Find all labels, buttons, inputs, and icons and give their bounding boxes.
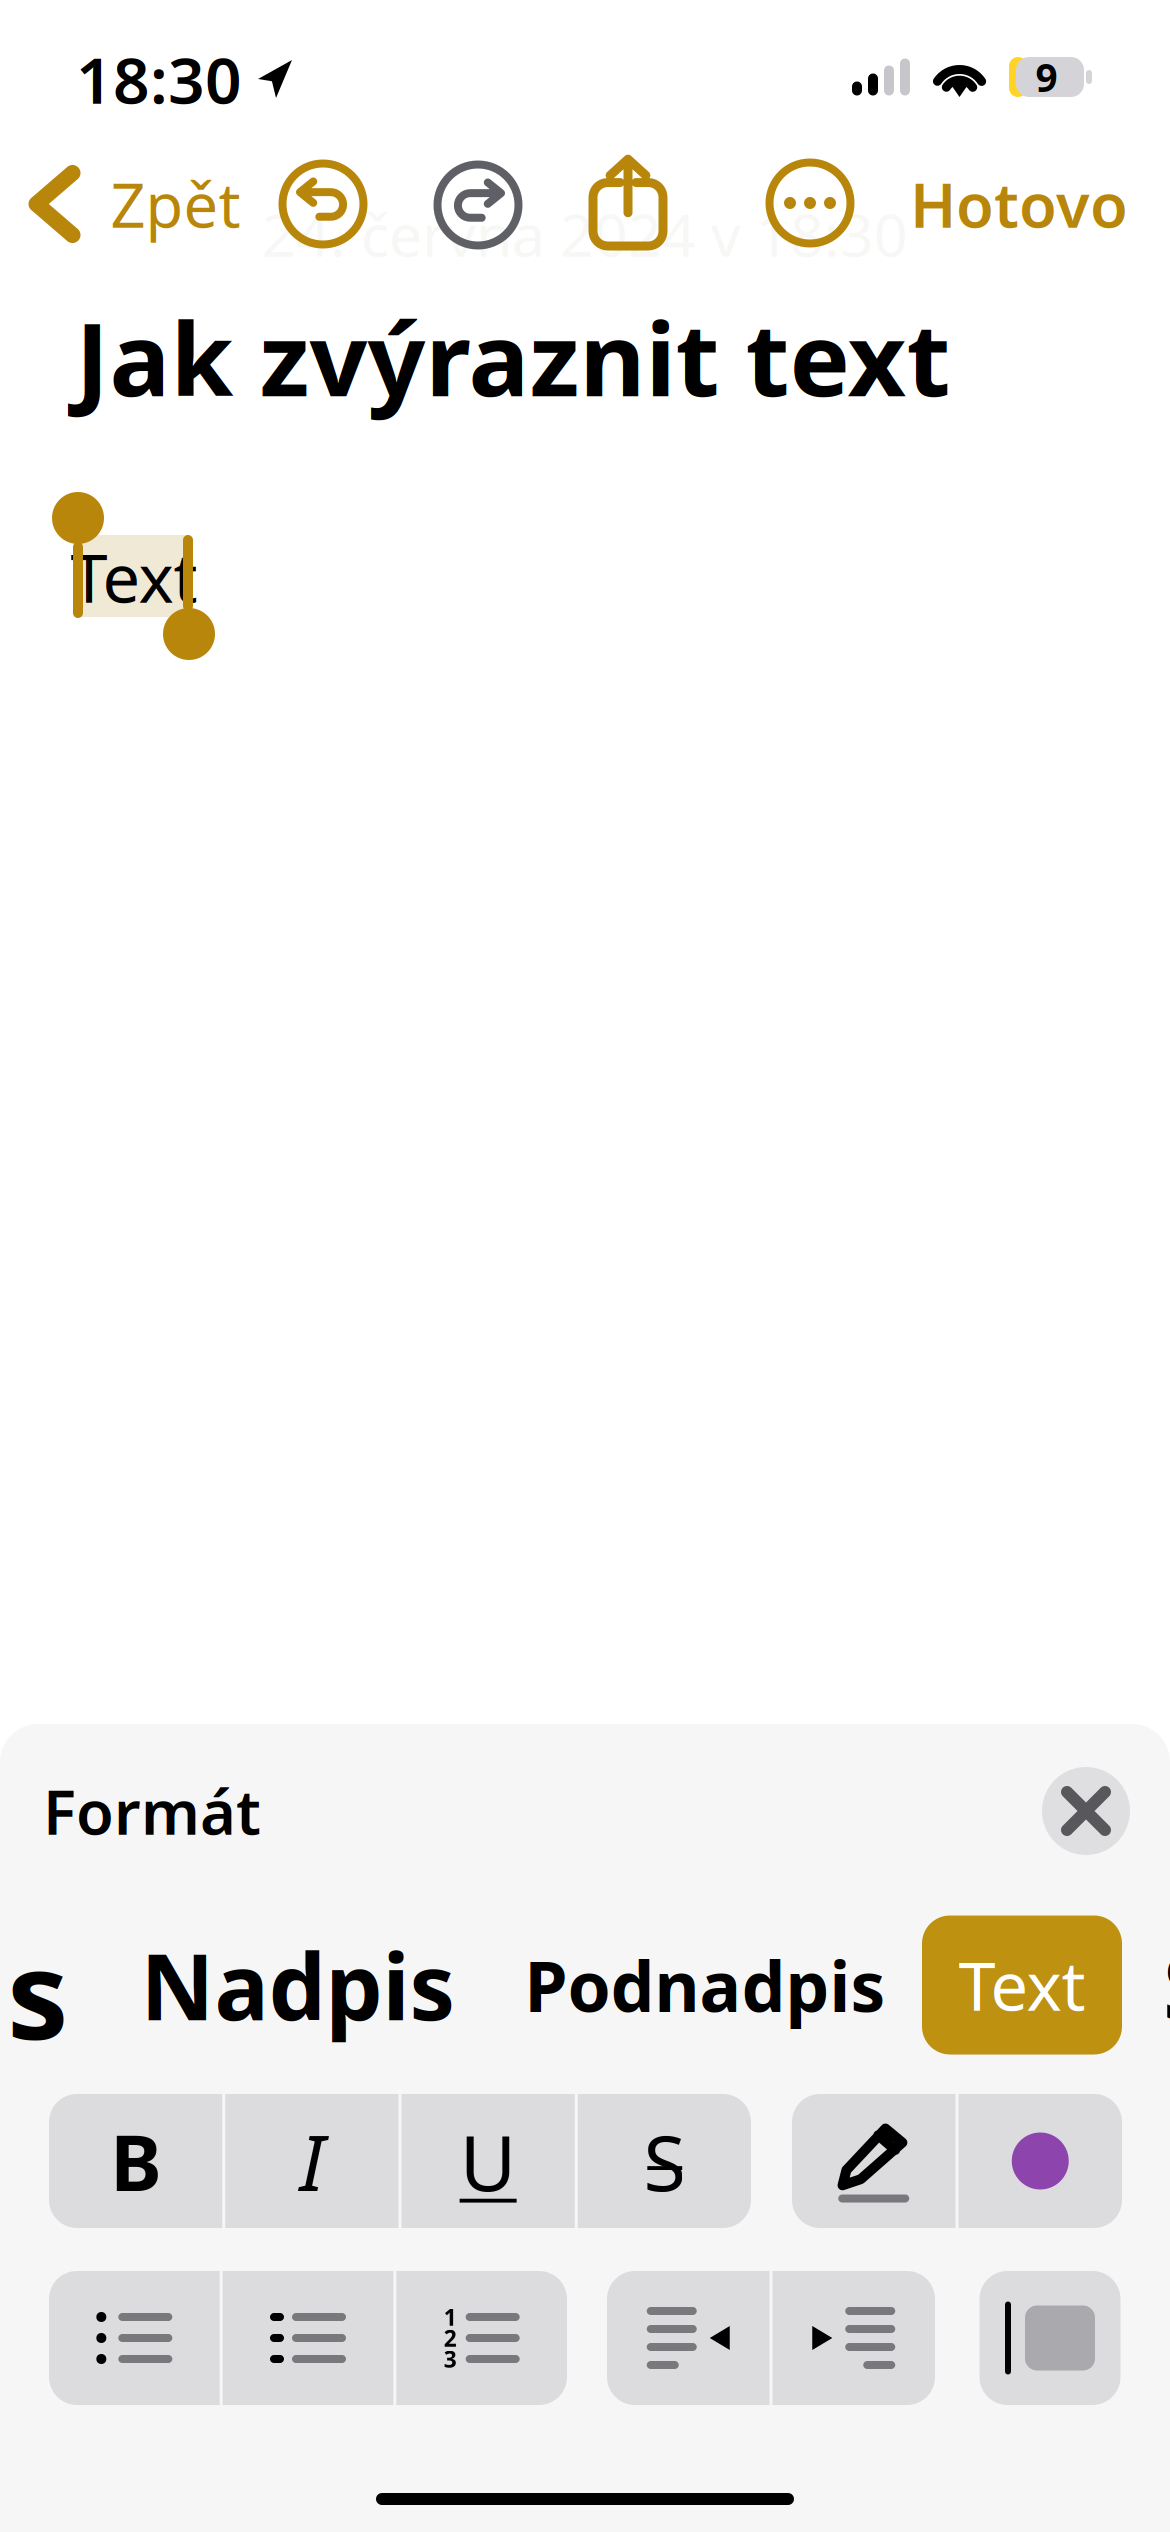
staticText: Text (958, 1941, 1085, 2029)
staticText: s (7, 1911, 69, 2073)
staticText: 2 (444, 2323, 457, 2353)
button[interactable]: Podnadpis (500, 1905, 909, 2065)
button[interactable]: Číslovaný seznam (396, 2271, 567, 2405)
staticText: 3 (444, 2344, 457, 2374)
button[interactable]: Další (756, 149, 864, 257)
staticText: S (643, 2110, 685, 2212)
button[interactable]: Podtržené (401, 2094, 575, 2228)
button[interactable]: Zpět o krok (269, 150, 377, 258)
staticText: U (460, 2110, 517, 2212)
staticText: 1 (444, 2302, 457, 2332)
staticText: Nadpis (140, 1925, 455, 2045)
staticText: Text (70, 533, 197, 621)
button[interactable]: Zavřít (1032, 1757, 1140, 1865)
staticText: 18:30 (76, 36, 242, 121)
button[interactable]: Zmenšit odsazení (607, 2271, 769, 2405)
button[interactable]: Odrážky (49, 2271, 220, 2405)
staticText: Zpět (110, 163, 240, 245)
button[interactable]: Zpět (7, 148, 254, 260)
button[interactable]: Vpřed o krok (424, 151, 532, 259)
button[interactable]: Pomlčky (223, 2271, 393, 2405)
button[interactable]: Hotovo (892, 148, 1146, 260)
button[interactable]: Barva (958, 2094, 1122, 2228)
button[interactable]: Kurzíva (225, 2094, 398, 2228)
staticText: I (299, 2110, 324, 2212)
button[interactable]: Sdílet (574, 147, 682, 255)
staticText: Podnadpis (524, 1939, 885, 2031)
button[interactable]: Blokový citát (979, 2271, 1120, 2405)
staticText: B (110, 2110, 161, 2212)
button[interactable]: Nadpis (116, 1899, 479, 2071)
button[interactable]: Tučné (49, 2094, 222, 2228)
staticText: Hotovo (910, 163, 1128, 245)
button[interactable]: Zvětšit odsazení (772, 2271, 935, 2405)
button[interactable]: Zvýrazňovač (792, 2094, 955, 2228)
staticText: Jak zvýraznit text (75, 290, 950, 424)
button[interactable]: Přeškrtnuté (578, 2094, 751, 2228)
staticText: 24. června 2024 v 18:30 (262, 195, 908, 273)
staticText: Sez (1163, 1925, 1170, 2045)
staticText: 9 (1035, 51, 1057, 103)
staticText: Formát (43, 1770, 261, 1852)
button[interactable]: Text (922, 1915, 1122, 2054)
